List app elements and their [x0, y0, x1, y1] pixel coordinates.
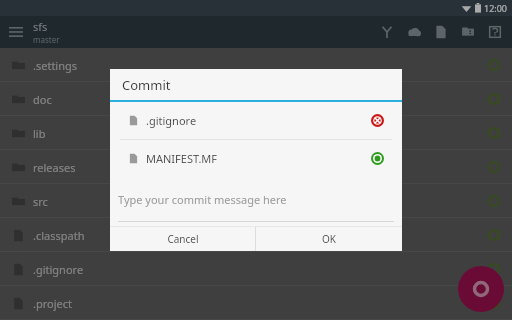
- staticText: lib: [33, 126, 46, 141]
- button[interactable]: Repository: [454, 16, 481, 48]
- staticText: .classpath: [33, 228, 85, 243]
- button[interactable]: Help: [481, 16, 508, 48]
- button[interactable]: .settings: [0, 48, 512, 82]
- staticText: Commit: [122, 76, 171, 94]
- staticText: .gitignore: [146, 113, 197, 128]
- button[interactable]: Open navigation drawer: [0, 16, 32, 48]
- button[interactable]: Branches: [373, 16, 400, 48]
- button[interactable]: Pull from remote: [400, 16, 427, 48]
- button[interactable]: Commit: [458, 266, 504, 312]
- button[interactable]: releases: [0, 150, 512, 184]
- staticText: master: [33, 34, 60, 45]
- staticText: 12:00: [484, 2, 508, 14]
- staticText: Type your commit message here: [118, 192, 287, 207]
- button[interactable]: Cancel: [110, 227, 255, 251]
- button[interactable]: MANIFEST.MF: [110, 140, 402, 177]
- staticText: Cancel: [167, 232, 199, 246]
- button[interactable]: lib: [0, 116, 512, 150]
- staticText: MANIFEST.MF: [146, 151, 218, 166]
- staticText: .project: [33, 296, 72, 311]
- button[interactable]: Type your commit message here: [110, 177, 402, 221]
- button[interactable]: OK: [256, 227, 402, 251]
- button[interactable]: .classpath: [0, 218, 512, 252]
- button[interactable]: .project: [0, 286, 512, 320]
- staticText: src: [33, 194, 48, 209]
- staticText: OK: [322, 232, 336, 246]
- button[interactable]: src: [0, 184, 512, 218]
- staticText: .gitignore: [33, 262, 84, 277]
- button[interactable]: doc: [0, 82, 512, 116]
- staticText: releases: [33, 160, 76, 175]
- button[interactable]: File: [427, 16, 454, 48]
- staticText: sfs: [33, 19, 48, 34]
- staticText: doc: [33, 92, 52, 107]
- button[interactable]: .gitignore: [0, 252, 512, 286]
- staticText: .settings: [33, 58, 78, 73]
- button[interactable]: .gitignore: [110, 102, 402, 139]
